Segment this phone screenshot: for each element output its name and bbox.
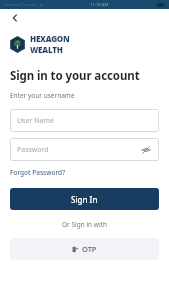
- staticText: Sign in to your account: [10, 68, 140, 84]
- staticText: WEALTH: [30, 44, 63, 55]
- staticText: 11:18 AM: [90, 2, 109, 8]
- button[interactable]: Forgot Password?: [10, 168, 66, 177]
- staticText: Sign In: [71, 194, 98, 205]
- staticText: Enter your username: [10, 91, 75, 100]
- staticText: User Name: [17, 116, 54, 126]
- button[interactable]: Password: [10, 138, 159, 161]
- button[interactable]: Sign In: [10, 188, 159, 210]
- staticText: HEXAGON: [30, 33, 70, 44]
- button[interactable]: Back: [8, 11, 22, 25]
- button[interactable]: User Name: [10, 109, 159, 132]
- staticText: Or Sign in with: [10, 220, 159, 229]
- button[interactable]: OTP: [10, 238, 159, 260]
- staticText: Forgot Password?: [10, 168, 66, 177]
- button[interactable]: Show password: [140, 144, 152, 156]
- staticText: Password: [17, 145, 49, 155]
- staticText: National Provider: [4, 2, 37, 7]
- staticText: OTP: [82, 244, 97, 254]
